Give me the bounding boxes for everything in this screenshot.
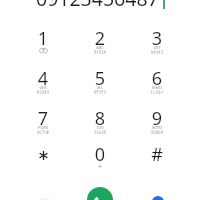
staticText: 2 xyxy=(72,26,128,51)
staticText: 1 xyxy=(15,26,71,51)
button[interactable]: # xyxy=(129,134,185,172)
staticText: 9 xyxy=(129,106,185,131)
staticText: PQRS xyxy=(15,125,71,130)
button[interactable]: 3 xyxy=(129,18,185,56)
button[interactable]: 4 xyxy=(15,58,71,96)
button[interactable]: 09123456487 xyxy=(36,0,159,12)
button[interactable]: 9 xyxy=(129,98,185,136)
button[interactable]: 1 xyxy=(15,18,71,56)
staticText: WXYZ xyxy=(129,125,185,130)
staticText: ﾊﾋﾌﾍﾎ xyxy=(15,130,71,135)
staticText: # xyxy=(129,142,185,167)
button[interactable]: 8 xyxy=(72,98,128,136)
button[interactable]: 5 xyxy=(72,58,128,96)
staticText: ABC xyxy=(72,45,128,50)
staticText: ｻｼｽｾｿ xyxy=(15,90,71,95)
button[interactable]: Video call xyxy=(152,196,164,200)
button[interactable]: Call xyxy=(87,187,113,200)
staticText: ｱｲｳｴｵ xyxy=(72,50,128,55)
staticText: 3 xyxy=(129,26,185,51)
button[interactable] xyxy=(15,134,71,172)
staticText: GHI xyxy=(15,85,71,90)
staticText: ｶｷｸｹｺ xyxy=(129,50,185,55)
staticText: + xyxy=(72,162,128,172)
staticText: 6 xyxy=(129,66,185,91)
button[interactable]: 6 xyxy=(129,58,185,96)
staticText: ﾗﾘﾙﾚﾛ xyxy=(129,130,185,135)
staticText: DEF xyxy=(129,45,185,50)
staticText: 5 xyxy=(72,66,128,91)
button[interactable]: 2 xyxy=(72,18,128,56)
button[interactable]: 7 xyxy=(15,98,71,136)
staticText: 0 xyxy=(72,142,128,167)
staticText: ﾅﾆﾇﾈﾉ xyxy=(129,90,185,95)
staticText: JKL xyxy=(72,85,128,90)
button[interactable]: 0 xyxy=(72,134,128,172)
staticText: 7 xyxy=(15,106,71,131)
staticText: ﾀﾁﾂﾃﾄ xyxy=(72,90,128,95)
staticText: ﾏﾐﾑﾒﾓ xyxy=(72,130,128,135)
staticText: 8 xyxy=(72,106,128,131)
staticText: TUV xyxy=(72,125,128,130)
staticText: 4 xyxy=(15,66,71,91)
staticText: MNO xyxy=(129,85,185,90)
